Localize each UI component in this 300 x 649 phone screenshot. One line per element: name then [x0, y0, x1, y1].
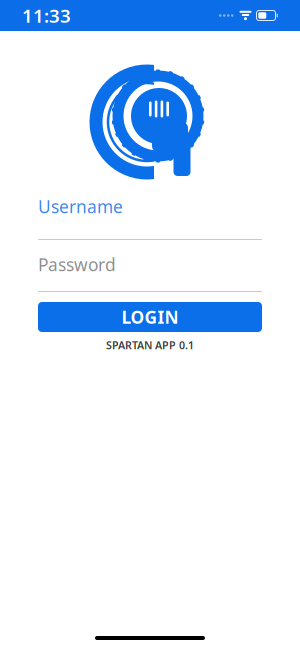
staticText: LOGIN	[121, 305, 178, 328]
staticText: 11:33	[22, 3, 71, 28]
staticText: Password	[38, 253, 116, 276]
button[interactable]: Password	[38, 240, 262, 292]
button[interactable]: LOGIN	[38, 302, 262, 332]
staticText: Username	[38, 195, 123, 218]
button[interactable]: Username	[38, 195, 262, 240]
staticText: SPARTAN APP 0.1	[106, 338, 194, 352]
